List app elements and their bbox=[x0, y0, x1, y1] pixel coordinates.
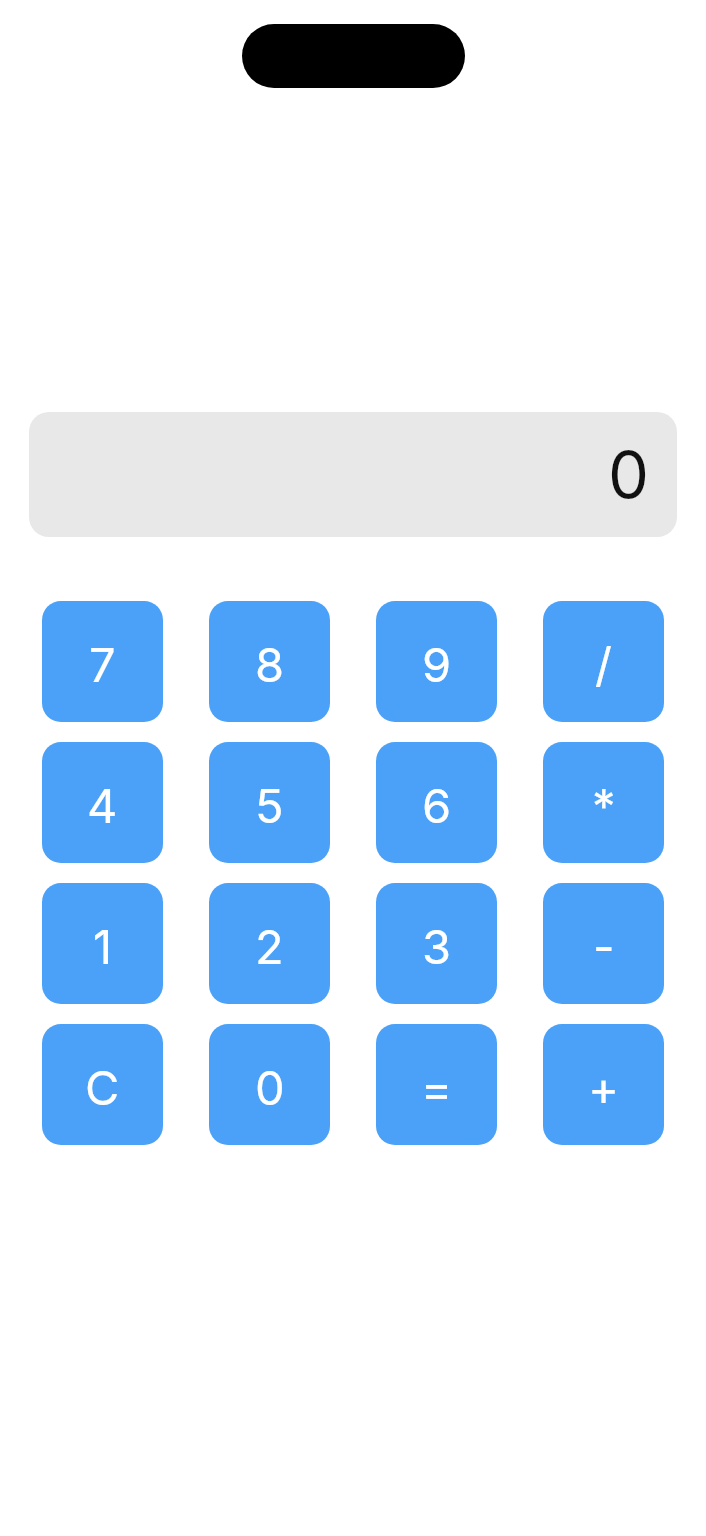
button[interactable]: 4 bbox=[42, 742, 163, 863]
button[interactable]: 2 bbox=[209, 883, 330, 1004]
staticText: 0 bbox=[255, 1059, 285, 1116]
staticText: C bbox=[85, 1059, 120, 1116]
staticText: 9 bbox=[422, 636, 452, 693]
staticText: 0 bbox=[608, 435, 650, 514]
staticText: + bbox=[588, 1059, 620, 1116]
staticText: 6 bbox=[422, 777, 452, 834]
staticText: - bbox=[593, 918, 615, 975]
button[interactable]: 8 bbox=[209, 601, 330, 722]
staticText: = bbox=[421, 1059, 453, 1116]
button[interactable]: + bbox=[543, 1024, 664, 1145]
staticText: 7 bbox=[89, 636, 116, 693]
button[interactable]: - bbox=[543, 883, 664, 1004]
button[interactable]: = bbox=[376, 1024, 497, 1145]
button[interactable]: 9 bbox=[376, 601, 497, 722]
staticText: / bbox=[595, 636, 612, 693]
staticText: 1 bbox=[93, 918, 113, 975]
button[interactable]: 6 bbox=[376, 742, 497, 863]
button[interactable]: 7 bbox=[42, 601, 163, 722]
staticText: 3 bbox=[422, 918, 452, 975]
button[interactable]: 0 bbox=[209, 1024, 330, 1145]
button[interactable]: C bbox=[42, 1024, 163, 1145]
staticText: 5 bbox=[255, 777, 284, 834]
button[interactable]: 1 bbox=[42, 883, 163, 1004]
staticText: 4 bbox=[87, 777, 118, 834]
staticText: 8 bbox=[255, 636, 285, 693]
button[interactable]: / bbox=[543, 601, 664, 722]
button[interactable]: 5 bbox=[209, 742, 330, 863]
button[interactable]: * bbox=[543, 742, 664, 863]
button[interactable]: 3 bbox=[376, 883, 497, 1004]
staticText: * bbox=[592, 777, 616, 834]
staticText: 2 bbox=[255, 918, 284, 975]
